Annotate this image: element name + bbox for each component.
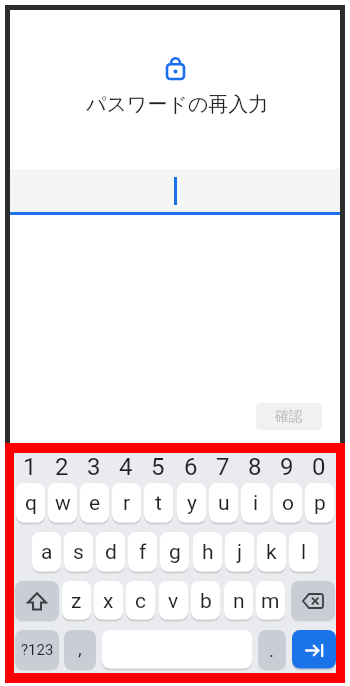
button[interactable] bbox=[102, 630, 252, 670]
button[interactable]: 6 bbox=[175, 453, 207, 479]
staticText: 0 bbox=[312, 453, 326, 479]
button[interactable] bbox=[292, 630, 336, 670]
staticText: y bbox=[187, 491, 197, 516]
button[interactable]: 4 bbox=[110, 453, 142, 479]
button[interactable]: 確認 bbox=[256, 403, 322, 430]
button[interactable]: c bbox=[126, 581, 155, 621]
button[interactable]: z bbox=[62, 581, 91, 621]
staticText: u bbox=[218, 491, 230, 516]
staticText: p bbox=[314, 491, 326, 516]
button[interactable] bbox=[10, 169, 340, 212]
button[interactable]: f bbox=[128, 532, 157, 573]
staticText: . bbox=[269, 639, 275, 661]
staticText: 4 bbox=[119, 453, 133, 479]
button[interactable]: 7 bbox=[207, 453, 239, 479]
button[interactable]: l bbox=[289, 532, 318, 573]
button[interactable]: 0 bbox=[303, 453, 335, 479]
staticText: w bbox=[55, 491, 71, 516]
staticText: r bbox=[123, 491, 131, 516]
staticText: o bbox=[282, 491, 294, 516]
staticText: パスワードの再入力 bbox=[86, 92, 269, 117]
button[interactable]: , bbox=[64, 630, 96, 670]
staticText: 7 bbox=[216, 453, 230, 479]
button[interactable]: g bbox=[160, 532, 189, 573]
staticText: c bbox=[135, 589, 146, 614]
staticText: 6 bbox=[184, 453, 198, 479]
staticText: j bbox=[237, 540, 243, 565]
staticText: 2 bbox=[55, 453, 69, 479]
staticText: 8 bbox=[248, 453, 262, 479]
staticText: s bbox=[73, 540, 84, 565]
staticText: ?123 bbox=[21, 641, 54, 659]
button[interactable]: u bbox=[209, 483, 238, 524]
staticText: x bbox=[103, 589, 114, 614]
button[interactable]: v bbox=[159, 581, 188, 621]
staticText: v bbox=[168, 589, 179, 614]
button[interactable]: . bbox=[258, 630, 286, 670]
button[interactable]: 9 bbox=[271, 453, 303, 479]
button[interactable]: h bbox=[193, 532, 222, 573]
button[interactable]: d bbox=[96, 532, 125, 573]
button[interactable]: 1 bbox=[14, 453, 46, 479]
staticText: t bbox=[155, 491, 162, 516]
staticText: 確認 bbox=[275, 408, 303, 426]
button[interactable]: m bbox=[256, 581, 285, 621]
staticText: d bbox=[105, 540, 117, 565]
staticText: l bbox=[301, 540, 307, 565]
button[interactable] bbox=[15, 581, 59, 621]
staticText: h bbox=[202, 540, 214, 565]
button[interactable]: n bbox=[224, 581, 253, 621]
button[interactable]: 5 bbox=[142, 453, 174, 479]
staticText: i bbox=[253, 491, 259, 516]
staticText: a bbox=[41, 540, 53, 565]
button[interactable] bbox=[291, 581, 335, 621]
button[interactable]: a bbox=[32, 532, 61, 573]
staticText: 9 bbox=[280, 453, 294, 479]
button[interactable]: b bbox=[191, 581, 220, 621]
button[interactable]: q bbox=[16, 483, 45, 524]
staticText: k bbox=[266, 540, 277, 565]
staticText: , bbox=[78, 637, 82, 659]
staticText: 1 bbox=[23, 453, 37, 479]
button[interactable]: 8 bbox=[239, 453, 271, 479]
staticText: f bbox=[139, 540, 147, 565]
button[interactable]: k bbox=[257, 532, 286, 573]
staticText: q bbox=[25, 491, 37, 516]
button[interactable]: j bbox=[225, 532, 254, 573]
staticText: z bbox=[71, 589, 82, 614]
button[interactable]: x bbox=[94, 581, 123, 621]
button[interactable]: y bbox=[177, 483, 206, 524]
staticText: e bbox=[89, 491, 101, 516]
button[interactable]: o bbox=[273, 483, 302, 524]
button[interactable]: 2 bbox=[46, 453, 78, 479]
button[interactable]: r bbox=[112, 483, 141, 524]
button[interactable]: t bbox=[144, 483, 173, 524]
button[interactable]: p bbox=[305, 483, 334, 524]
button[interactable]: s bbox=[64, 532, 93, 573]
staticText: g bbox=[169, 540, 181, 565]
button[interactable]: i bbox=[241, 483, 270, 524]
staticText: m bbox=[261, 589, 280, 614]
staticText: 5 bbox=[151, 453, 165, 479]
button[interactable]: e bbox=[80, 483, 109, 524]
button[interactable]: w bbox=[48, 483, 77, 524]
button[interactable]: 3 bbox=[78, 453, 110, 479]
staticText: n bbox=[233, 589, 245, 614]
staticText: 3 bbox=[87, 453, 101, 479]
staticText: b bbox=[200, 589, 212, 614]
button[interactable]: ?123 bbox=[15, 630, 59, 670]
